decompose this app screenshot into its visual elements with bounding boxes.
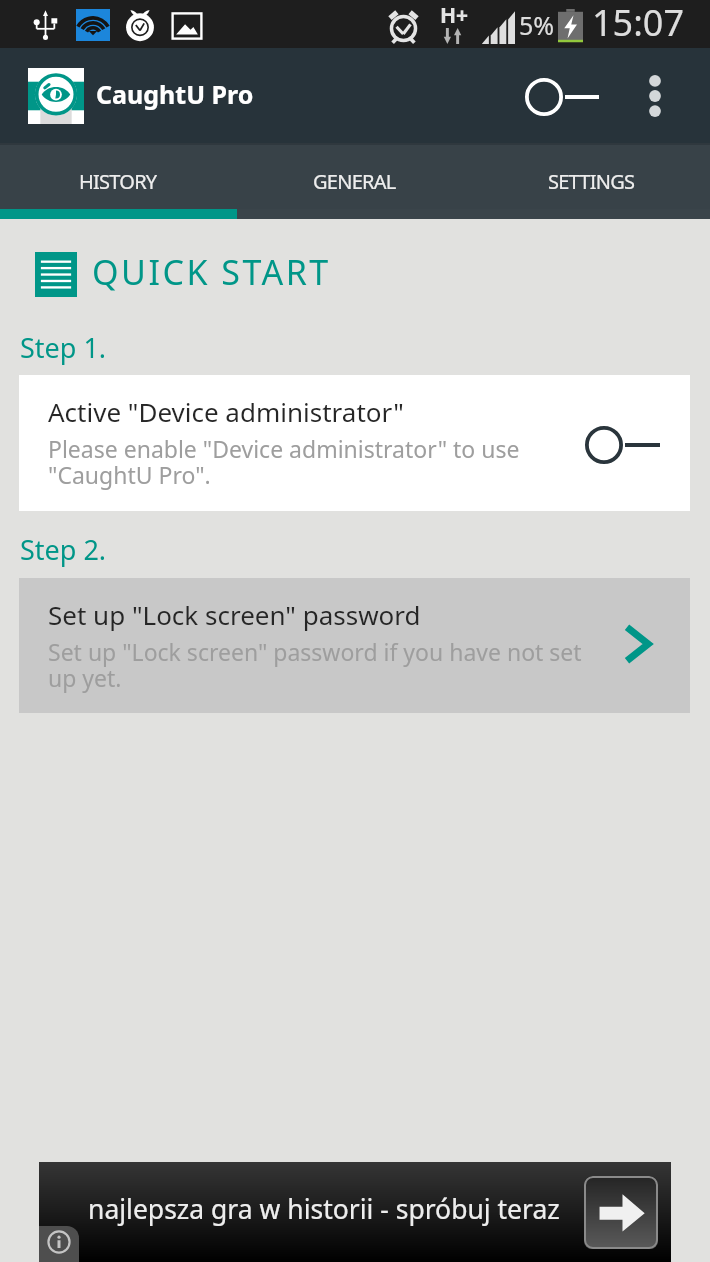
staticText: najlepsza gra w historii - spróbuj teraz — [88, 1191, 560, 1227]
button[interactable]: Set up "Lock screen" password — [19, 578, 690, 713]
staticText: HISTORY — [79, 168, 157, 195]
staticText: Active "Device administrator" — [48, 394, 404, 429]
staticText: Please enable "Device administrator" to … — [48, 433, 520, 491]
staticText: CaughtU Pro — [96, 77, 254, 111]
button[interactable]: Active "Device administrator" — [19, 375, 690, 511]
button[interactable]: najlepsza gra w historii - spróbuj teraz — [39, 1162, 671, 1262]
button[interactable]: GENERAL — [236, 145, 473, 209]
staticText: SETTINGS — [548, 168, 635, 195]
button[interactable]: More options — [626, 48, 684, 143]
button[interactable]: SETTINGS — [473, 145, 710, 209]
button[interactable]: HISTORY — [0, 145, 236, 209]
staticText: Set up "Lock screen" password — [48, 597, 421, 632]
staticText: 15:07 — [592, 0, 685, 46]
staticText: Step 1. — [20, 329, 107, 366]
staticText: QUICK START — [92, 249, 331, 295]
button[interactable]: Protection off — [505, 48, 619, 143]
staticText: H+ — [440, 1, 469, 30]
staticText: 5% — [519, 8, 555, 42]
staticText: GENERAL — [313, 168, 396, 195]
staticText: Step 2. — [20, 531, 107, 568]
staticText: Set up "Lock screen" password if you hav… — [48, 636, 582, 694]
button[interactable]: Open advertisement — [584, 1176, 658, 1249]
button[interactable]: Ad information — [39, 1226, 79, 1262]
